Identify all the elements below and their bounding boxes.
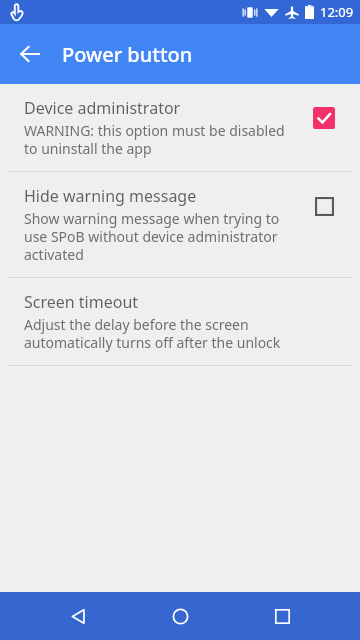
button[interactable]: Home <box>156 592 204 640</box>
button[interactable]: Back <box>8 32 52 76</box>
staticText: Adjust the delay before the screen autom… <box>24 315 292 352</box>
button[interactable]: Recent apps <box>258 592 306 640</box>
staticText: 12:09 <box>320 3 354 21</box>
staticText: Device administrator <box>24 97 181 119</box>
staticText: Power button <box>62 41 193 68</box>
button[interactable]: Device administrator <box>0 84 360 171</box>
button[interactable]: Hide warning message <box>0 172 360 277</box>
button[interactable]: Screen timeout <box>0 278 360 365</box>
button[interactable]: Checked <box>313 107 335 129</box>
staticText: WARNING: this option must be disabled to… <box>24 121 292 158</box>
staticText: Show warning message when trying to use … <box>24 209 292 264</box>
button[interactable]: Unchecked <box>313 195 335 217</box>
button[interactable]: Back <box>54 592 102 640</box>
staticText: Hide warning message <box>24 185 197 207</box>
staticText: Screen timeout <box>24 291 139 313</box>
